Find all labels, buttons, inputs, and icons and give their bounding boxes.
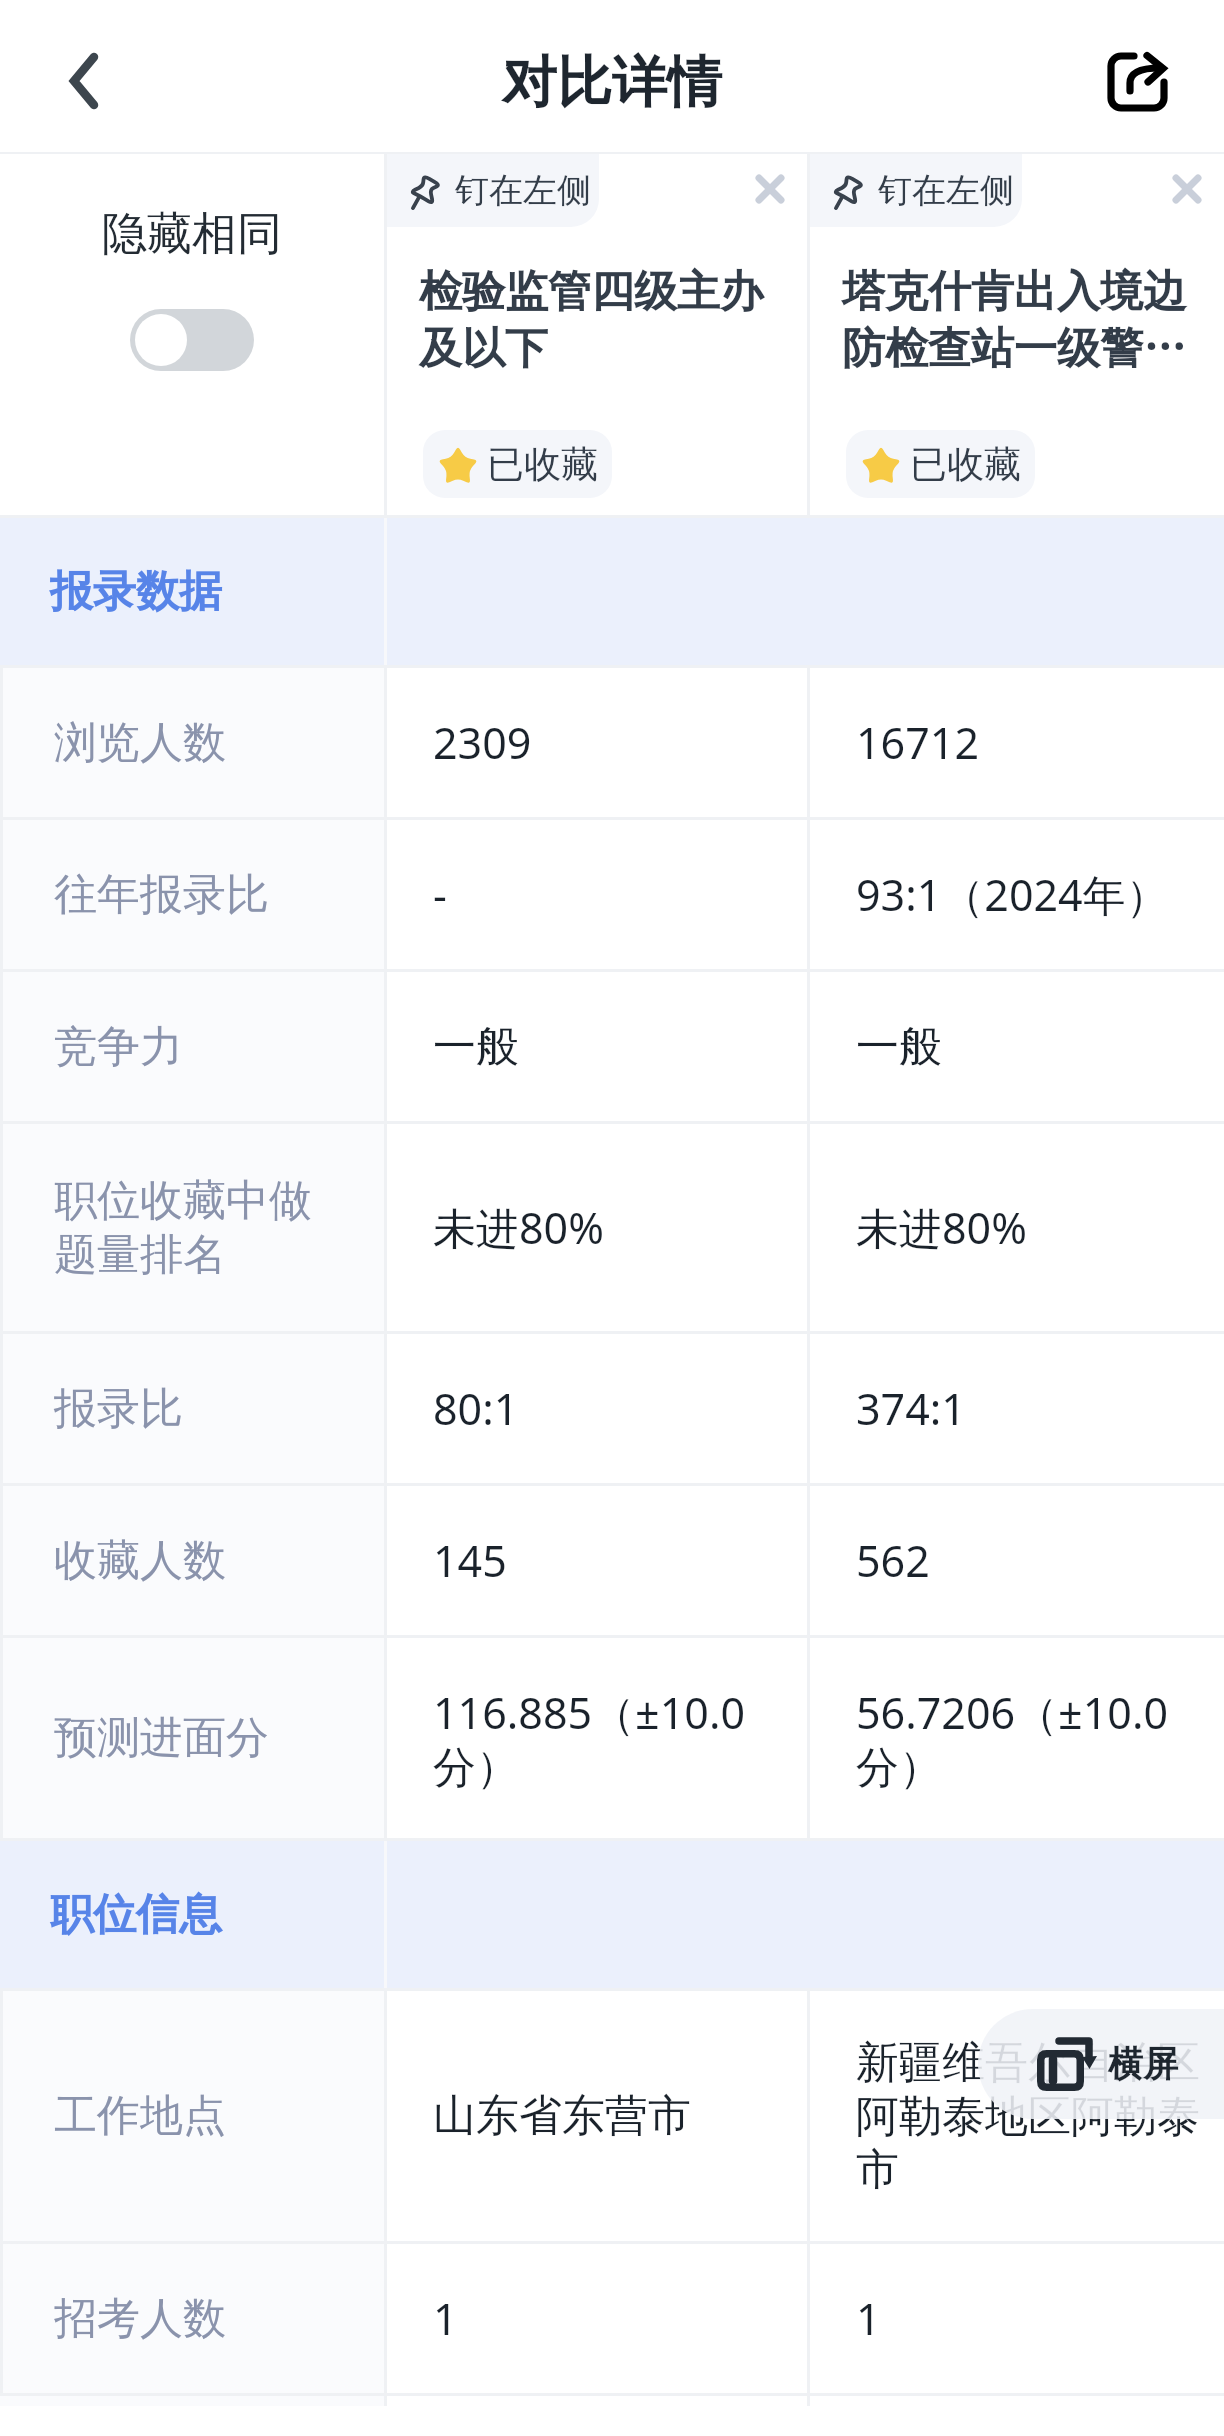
button[interactable]: Share xyxy=(1082,27,1192,137)
staticText: 93:1（2024年） xyxy=(856,865,1169,924)
staticText: 145 xyxy=(433,1531,507,1590)
staticText: 横屏 xyxy=(1108,2042,1178,2086)
staticText: 往年报录比 xyxy=(54,868,269,922)
staticText: 山东省东营市 xyxy=(433,2089,691,2143)
staticText: 374:1 xyxy=(856,1379,966,1438)
staticText: 收藏人数 xyxy=(54,1534,226,1588)
button[interactable]: 已收藏 xyxy=(423,430,612,498)
staticText: 检验监管四级主办及以下 xyxy=(419,265,801,376)
staticText: 1 xyxy=(856,2289,881,2348)
staticText: 职位信息 xyxy=(50,1888,222,1942)
staticText: 56.7206（±10.0分） xyxy=(856,1683,1202,1794)
staticText: 未进80% xyxy=(856,1198,1027,1257)
staticText: 1 xyxy=(433,2289,458,2348)
button[interactable]: Remove column xyxy=(1157,159,1217,219)
staticText: 未进80% xyxy=(433,1198,604,1257)
staticText: 562 xyxy=(856,1531,930,1590)
button[interactable]: Hide identical toggle xyxy=(130,309,254,371)
staticText: 已收藏 xyxy=(910,441,1021,488)
staticText: 2309 xyxy=(433,713,532,772)
button[interactable]: 钉在左侧 xyxy=(387,154,599,227)
button[interactable]: 已收藏 xyxy=(846,430,1035,498)
staticText: 招考人数 xyxy=(54,2292,226,2346)
staticText: 钉在左侧 xyxy=(455,169,591,212)
staticText: 16712 xyxy=(856,713,979,772)
staticText: - xyxy=(433,865,447,924)
button[interactable]: Back xyxy=(29,26,139,136)
staticText: 塔克什肯出入境边防检查站一级警察以下 xyxy=(842,265,1218,376)
staticText: 已收藏 xyxy=(487,441,598,488)
staticText: 一般 xyxy=(856,1020,942,1074)
button[interactable]: Remove column xyxy=(740,159,800,219)
staticText: 新疆维吾尔自治区阿勒泰地区阿勒泰市 xyxy=(856,2036,1202,2196)
staticText: 职位收藏中做题量排名 xyxy=(54,1174,344,1281)
staticText: 报录数据 xyxy=(50,565,222,619)
staticText: 工作地点 xyxy=(54,2089,226,2143)
staticText: 钉在左侧 xyxy=(878,169,1014,212)
staticText: 对比详情 xyxy=(502,48,722,117)
button[interactable]: Switch to landscape xyxy=(978,2009,1224,2119)
staticText: 预测进面分 xyxy=(54,1711,269,1765)
staticText: 隐藏相同 xyxy=(102,206,282,263)
staticText: 一般 xyxy=(433,1020,519,1074)
staticText: 116.885（±10.0分） xyxy=(433,1683,785,1794)
staticText: 浏览人数 xyxy=(54,716,226,770)
staticText: 竞争力 xyxy=(54,1020,183,1074)
staticText: 80:1 xyxy=(433,1379,519,1438)
button[interactable]: 钉在左侧 xyxy=(810,154,1022,227)
staticText: 报录比 xyxy=(54,1382,183,1436)
